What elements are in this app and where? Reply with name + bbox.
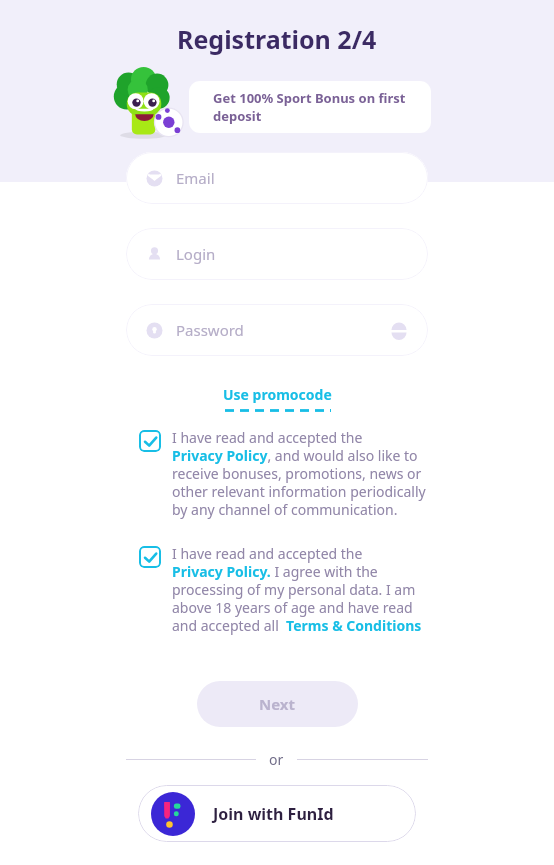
staticText: or [269, 750, 284, 769]
staticText: Email [176, 168, 215, 188]
button[interactable]: Email [126, 152, 428, 204]
staticText: I have read and accepted the Privacy Pol… [172, 544, 434, 635]
button[interactable]: Checked [139, 544, 434, 635]
other: Show password [390, 321, 408, 339]
staticText: I have read and accepted the Privacy Pol… [172, 428, 434, 519]
button[interactable]: Next [197, 681, 358, 727]
staticText: Registration 2/4 [177, 22, 377, 56]
button[interactable]: Use promocode [217, 383, 338, 414]
staticText: Join with FunId [213, 803, 334, 825]
staticText: Next [259, 694, 296, 714]
button[interactable]: Get 100% Sport Bonus on first deposit [189, 81, 431, 133]
other: Checked [139, 430, 161, 452]
staticText: Get 100% Sport Bonus on first deposit [213, 89, 421, 125]
other: Checked [139, 546, 161, 568]
button[interactable]: Password [126, 304, 428, 356]
staticText: Login [176, 244, 216, 264]
button[interactable]: Join with FunId [138, 785, 416, 842]
staticText: Password [176, 320, 244, 340]
staticText: Use promocode [223, 385, 332, 404]
button[interactable]: Login [126, 228, 428, 280]
button[interactable]: Checked [139, 428, 434, 519]
